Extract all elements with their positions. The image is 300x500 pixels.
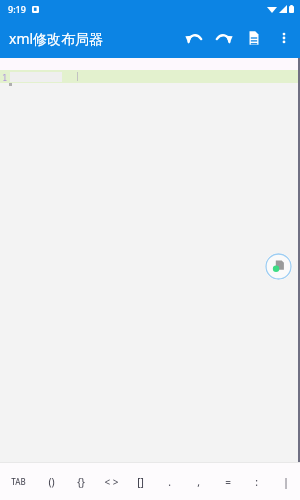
button[interactable]: Preview layout <box>265 253 292 280</box>
staticText: TAB <box>11 476 26 487</box>
button[interactable]: : <box>242 463 271 500</box>
staticText: 1 <box>2 71 8 83</box>
button[interactable]: [] <box>126 463 155 500</box>
staticText: xml修改布局器 <box>9 29 104 48</box>
button[interactable]: = <box>213 463 242 500</box>
button[interactable]: . <box>155 463 184 500</box>
button[interactable]: Undo <box>179 18 209 58</box>
button[interactable]: < > <box>96 463 126 500</box>
staticText: () <box>48 475 55 489</box>
button[interactable]: {} <box>66 463 96 500</box>
staticText: | <box>283 475 289 489</box>
staticText: {} <box>77 475 85 489</box>
staticText: : <box>255 475 258 489</box>
button[interactable]: 1 <box>0 70 300 83</box>
button[interactable]: Redo <box>209 18 239 58</box>
button[interactable]: TAB <box>0 463 36 500</box>
button[interactable]: Open file <box>239 18 269 58</box>
button[interactable]: , <box>184 463 213 500</box>
button[interactable]: More options <box>269 18 299 58</box>
staticText: [] <box>137 475 144 489</box>
staticText: . <box>168 475 171 489</box>
button[interactable]: () <box>36 463 66 500</box>
staticText: , <box>197 475 200 489</box>
staticText: = <box>225 475 231 489</box>
button[interactable]: | <box>271 463 300 500</box>
staticText: 9:19 <box>8 3 26 15</box>
staticText: < > <box>104 475 119 489</box>
